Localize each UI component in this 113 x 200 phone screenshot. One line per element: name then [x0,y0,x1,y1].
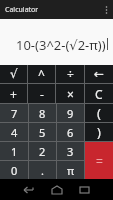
button[interactable]: 6 [57,123,84,141]
staticText: 8 [39,106,46,121]
staticText: 9 [67,106,74,121]
button[interactable]: 7 [0,104,28,122]
button[interactable]: 4 [0,123,28,141]
button[interactable]: × [56,84,84,103]
button[interactable]: . [29,161,56,179]
button[interactable] [105,6,108,14]
button[interactable]: 1 [0,142,28,160]
button[interactable]: 0 [0,161,28,179]
staticText: + [10,86,17,102]
staticText: 6 [67,125,74,140]
button[interactable]: √ [0,65,27,83]
button[interactable] [79,186,90,194]
button[interactable]: 2 [29,142,56,160]
staticText: ^ [38,66,45,82]
staticText: 2 [39,144,46,159]
button[interactable]: - [28,84,55,103]
staticText: C [95,86,103,102]
staticText: 10-(3^2-(√2-π)) [16,36,106,54]
button[interactable]: C [85,84,113,103]
staticText: 1 [11,144,18,159]
staticText: π [67,163,75,178]
staticText: ← [94,67,105,81]
button[interactable]: = [85,142,113,179]
staticText: ( [97,104,101,122]
button[interactable]: 8 [29,104,56,122]
staticText: . [41,163,44,178]
button[interactable]: ÷ [56,65,84,83]
staticText: 5 [39,125,46,140]
staticText: ) [97,123,101,141]
button[interactable]: ( [85,104,113,122]
button[interactable] [51,186,63,194]
button[interactable]: ) [85,123,113,141]
button[interactable]: π [57,161,84,179]
staticText: ÷ [67,66,74,82]
staticText: 4 [11,125,18,140]
staticText: × [67,86,74,102]
staticText: Calculator [5,5,39,15]
button[interactable]: 3 [57,142,84,160]
staticText: = [96,153,103,169]
button[interactable]: + [0,84,27,103]
staticText: - [40,86,44,102]
button[interactable] [23,186,35,194]
button[interactable]: 9 [57,104,84,122]
staticText: 0 [11,163,18,178]
staticText: 7 [11,106,18,121]
button[interactable]: ^ [28,65,55,83]
staticText: √ [10,67,18,81]
button[interactable]: 5 [29,123,56,141]
button[interactable]: ← [85,65,113,83]
staticText: 3 [67,144,74,159]
